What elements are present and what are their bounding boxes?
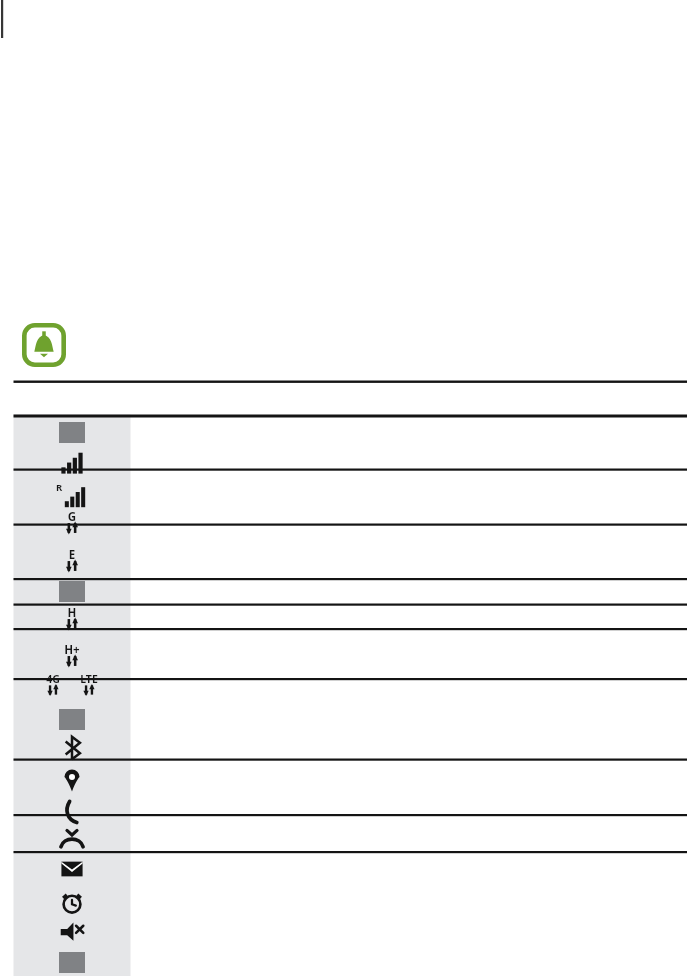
staticText: H+	[44, 642, 100, 658]
staticText: E	[44, 547, 100, 563]
staticText: LTE	[61, 672, 117, 688]
button[interactable]: Status bar icon reference table	[0, 0, 690, 976]
staticText: R	[31, 481, 87, 497]
staticText: 4G	[25, 672, 81, 688]
staticText: G	[44, 509, 100, 525]
staticText: H	[44, 605, 100, 621]
